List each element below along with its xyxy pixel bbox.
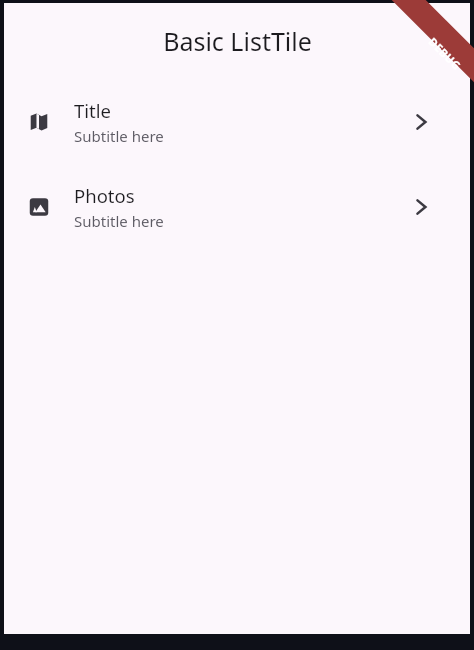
staticText: Basic ListTile [163, 24, 312, 58]
staticText: Subtitle here [74, 211, 164, 231]
staticText: Photos [74, 183, 135, 208]
staticText: DEBUG [426, 34, 464, 73]
button[interactable]: Photos [4, 164, 470, 249]
button[interactable]: Title [4, 79, 470, 164]
staticText: Title [74, 98, 111, 123]
staticText: Subtitle here [74, 126, 164, 146]
